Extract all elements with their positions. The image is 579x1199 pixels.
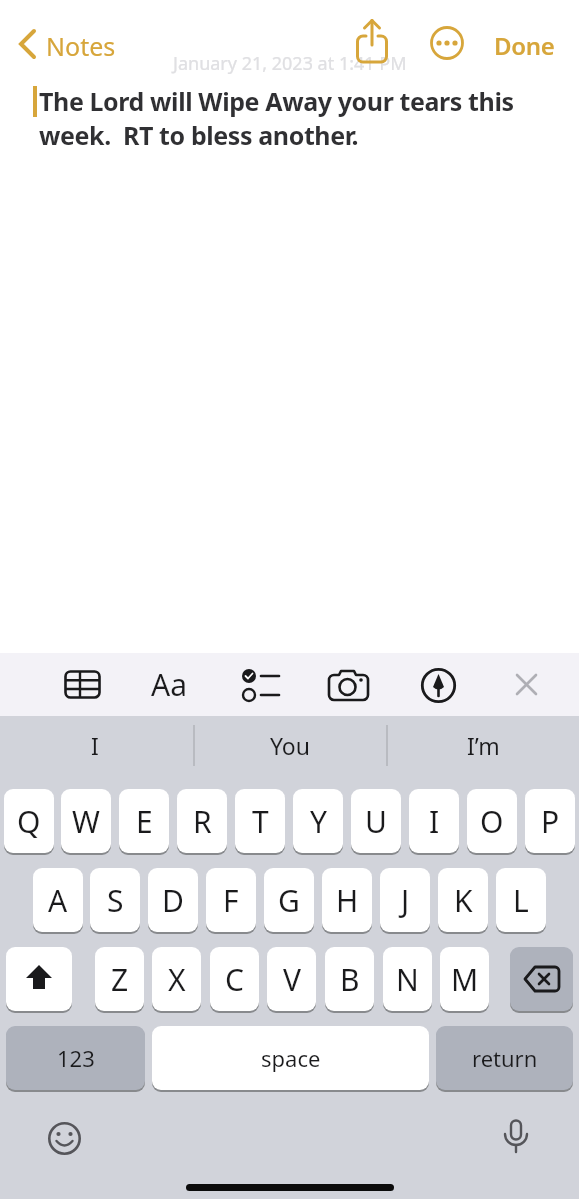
staticText: E	[136, 801, 153, 842]
button[interactable]: L	[496, 868, 546, 932]
staticText: K	[454, 880, 473, 921]
button[interactable]: P	[525, 789, 575, 853]
button[interactable]: I	[20, 722, 170, 768]
staticText: A	[48, 880, 68, 921]
button[interactable]: U	[351, 789, 401, 853]
staticText: Y	[310, 801, 327, 842]
button[interactable]: D	[148, 868, 198, 932]
button[interactable]: Notes	[46, 29, 116, 63]
button[interactable]	[502, 1119, 530, 1159]
button[interactable]	[510, 947, 573, 1011]
button[interactable]: return	[436, 1026, 573, 1090]
button[interactable]: M	[440, 947, 489, 1011]
button[interactable]: J	[380, 868, 430, 932]
button[interactable]: B	[325, 947, 374, 1011]
staticText: H	[336, 880, 359, 921]
button[interactable]	[356, 19, 388, 63]
staticText: Z	[111, 959, 129, 1000]
staticText: X	[168, 959, 186, 1000]
button[interactable]: R	[177, 789, 227, 853]
staticText: F	[223, 880, 239, 921]
staticText: D	[162, 880, 184, 921]
staticText: L	[513, 880, 529, 921]
staticText: O	[480, 801, 504, 842]
staticText: R	[193, 801, 212, 842]
button[interactable]: Y	[293, 789, 343, 853]
staticText: space	[261, 1043, 321, 1073]
button[interactable]	[515, 673, 538, 696]
button[interactable]	[64, 670, 101, 699]
button[interactable]: S	[90, 868, 140, 932]
staticText: M	[451, 959, 479, 1000]
button[interactable]	[47, 1121, 82, 1156]
button[interactable]: G	[264, 868, 314, 932]
button[interactable]: O	[467, 789, 517, 853]
staticText: J	[401, 880, 410, 921]
button[interactable]	[327, 669, 370, 702]
staticText: return	[472, 1043, 538, 1073]
button[interactable]	[420, 667, 457, 704]
staticText: The Lord will Wipe Away your tears this …	[39, 84, 514, 152]
button[interactable]: E	[119, 789, 169, 853]
button[interactable]: space	[152, 1026, 429, 1090]
button[interactable]: W	[61, 789, 111, 853]
button[interactable]: X	[152, 947, 201, 1011]
button[interactable]	[241, 668, 281, 703]
button[interactable]: I’m	[408, 722, 558, 768]
staticText: January 21, 2023 at 1:41 PM	[173, 51, 407, 76]
button[interactable]: A	[33, 868, 83, 932]
staticText: I	[429, 801, 440, 842]
button[interactable]: Q	[4, 789, 54, 853]
staticText: Notes	[46, 29, 116, 63]
staticText: Done	[494, 29, 555, 62]
staticText: B	[340, 959, 360, 1000]
staticText: I’m	[467, 730, 500, 761]
staticText: 123	[57, 1043, 95, 1073]
button[interactable]: I	[409, 789, 459, 853]
button[interactable]: You	[215, 722, 365, 768]
staticText: C	[225, 959, 244, 1000]
button[interactable]	[18, 28, 38, 60]
button[interactable]: K	[438, 868, 488, 932]
button[interactable]	[6, 947, 72, 1011]
staticText: Aa	[151, 664, 187, 705]
staticText: W	[72, 801, 100, 842]
staticText: I	[91, 730, 99, 761]
button[interactable]: C	[210, 947, 259, 1011]
staticText: Q	[17, 801, 41, 842]
button[interactable]: T	[235, 789, 285, 853]
staticText: V	[283, 959, 301, 1000]
button[interactable]: Z	[95, 947, 144, 1011]
button[interactable]: 123	[6, 1026, 145, 1090]
button[interactable]: V	[267, 947, 316, 1011]
staticText: U	[365, 801, 387, 842]
button[interactable]: Done	[494, 29, 555, 62]
staticText: N	[396, 959, 419, 1000]
button[interactable]: H	[322, 868, 372, 932]
staticText: You	[270, 730, 310, 761]
button[interactable]: F	[206, 868, 256, 932]
staticText: P	[541, 801, 560, 842]
button[interactable]	[430, 26, 464, 60]
staticText: G	[278, 880, 300, 921]
button[interactable]: N	[383, 947, 432, 1011]
staticText: S	[107, 880, 124, 921]
staticText: T	[252, 801, 269, 842]
button[interactable]: Aa	[151, 664, 187, 705]
